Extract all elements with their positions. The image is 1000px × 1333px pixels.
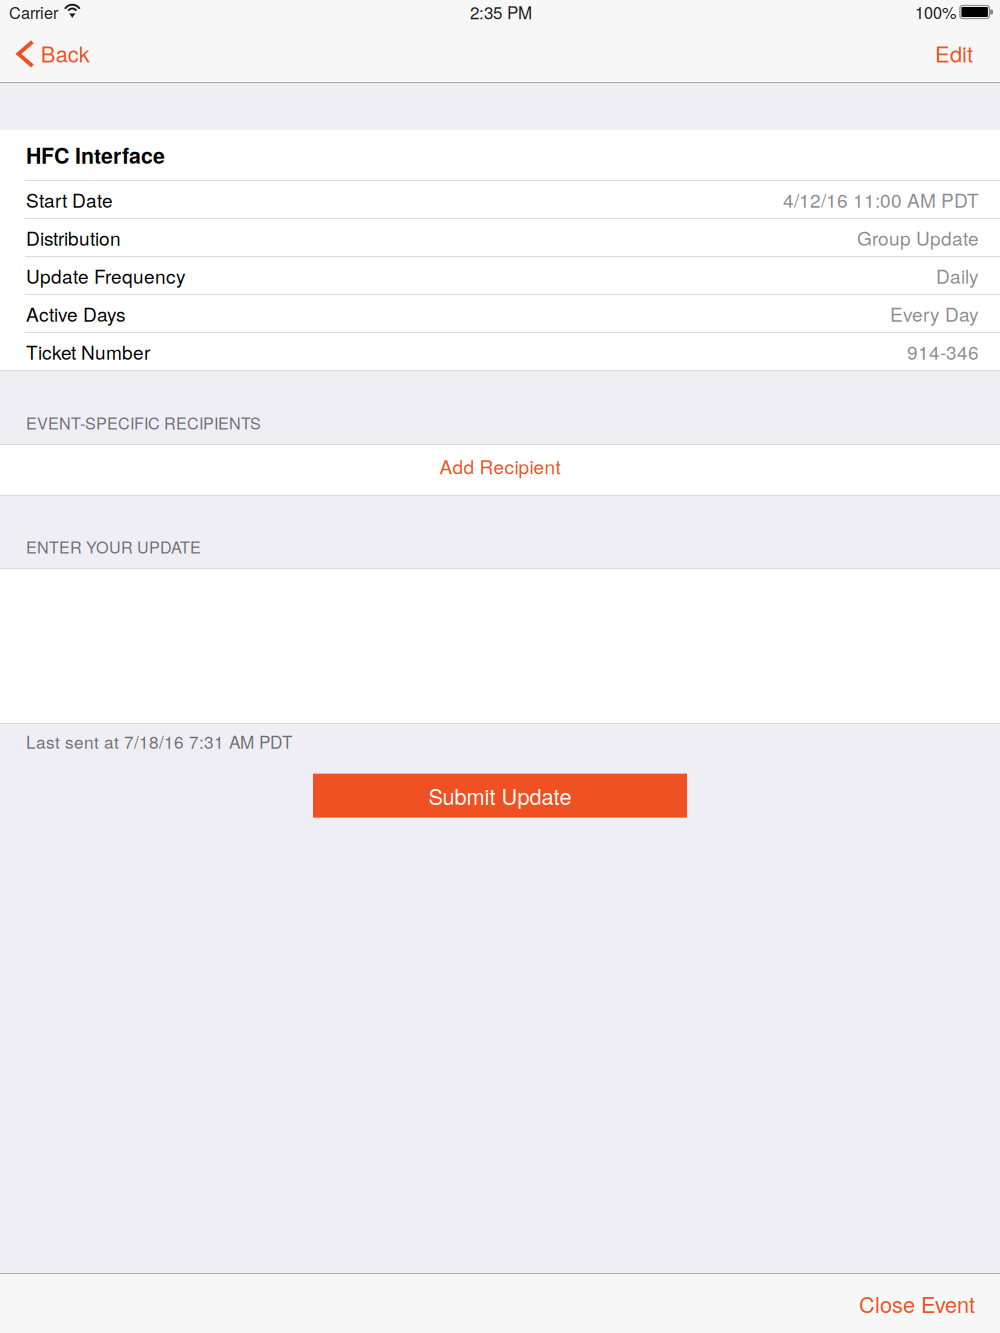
staticText: HFC Interface: [26, 140, 165, 170]
staticText: Update Frequency: [26, 262, 186, 289]
button[interactable]: Submit Update: [313, 774, 687, 818]
staticText: Start Date: [26, 186, 113, 213]
staticText: Daily: [936, 262, 979, 289]
staticText: Submit Update: [428, 780, 571, 811]
staticText: 914-346: [907, 338, 979, 365]
staticText: ENTER YOUR UPDATE: [26, 535, 201, 558]
staticText: 2:35 PM: [470, 0, 532, 24]
staticText: Group Update: [857, 224, 979, 251]
staticText: Carrier: [9, 0, 58, 24]
staticText: Ticket Number: [26, 338, 150, 365]
staticText: Every Day: [890, 300, 979, 327]
staticText: Edit: [935, 37, 973, 69]
staticText: EVENT-SPECIFIC RECIPIENTS: [26, 411, 261, 434]
button[interactable]: Back: [0, 28, 104, 82]
staticText: Distribution: [26, 224, 121, 251]
staticText: Close Event: [859, 1288, 975, 1319]
staticText: Active Days: [26, 300, 126, 327]
staticText: 4/12/16 11:00 AM PDT: [783, 186, 979, 213]
staticText: Last sent at 7/18/16 7:31 AM PDT: [26, 729, 293, 754]
staticText: Back: [41, 37, 90, 69]
button[interactable]: Add Recipient: [0, 445, 1000, 495]
button[interactable]: Edit: [911, 28, 1000, 82]
staticText: 100%: [915, 0, 956, 24]
button[interactable]: Close Event: [839, 1274, 1000, 1333]
staticText: Add Recipient: [439, 452, 560, 480]
